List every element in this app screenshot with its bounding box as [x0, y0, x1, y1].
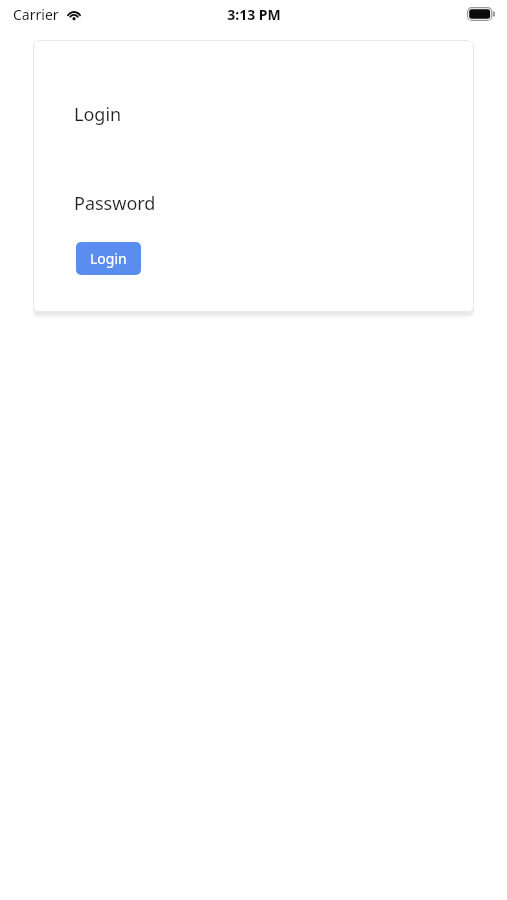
staticText: Login — [90, 249, 127, 268]
button[interactable]: Login — [74, 102, 433, 127]
button[interactable]: Password — [74, 191, 433, 216]
staticText: 3:13 PM — [227, 5, 281, 24]
staticText: Login — [74, 102, 122, 127]
staticText: Carrier — [13, 5, 59, 24]
staticText: Password — [74, 191, 156, 216]
button[interactable]: Login — [76, 242, 141, 275]
